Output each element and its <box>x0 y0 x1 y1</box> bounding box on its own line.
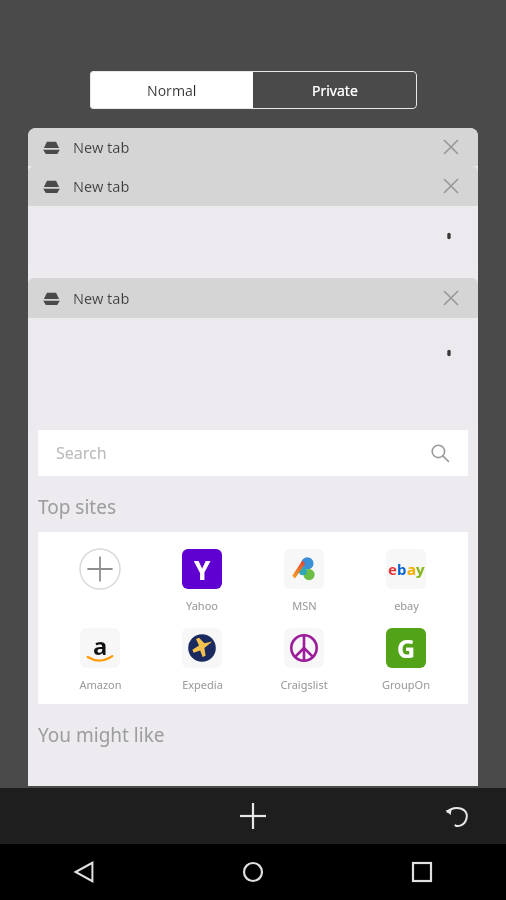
button[interactable]: a <box>60 625 140 692</box>
button[interactable]: Normal <box>90 71 253 109</box>
staticText: You might like <box>38 722 165 748</box>
button[interactable]: Add site <box>60 546 140 598</box>
staticText: Craigslist <box>280 677 328 692</box>
staticText: Search <box>56 442 107 464</box>
staticText: Yahoo <box>186 598 218 613</box>
staticText: Top sites <box>38 494 117 520</box>
staticText: a <box>93 629 108 661</box>
staticText: Normal <box>147 81 197 100</box>
button[interactable]: Y <box>162 546 242 613</box>
staticText: GroupOn <box>382 677 430 692</box>
button[interactable]: New tab <box>28 166 478 206</box>
button[interactable]: New tab <box>28 128 478 166</box>
staticText: Private <box>312 81 358 100</box>
staticText: Expedia <box>182 677 223 692</box>
button[interactable]: Close tab <box>434 281 468 315</box>
button[interactable]: Private <box>253 71 417 109</box>
button[interactable]: MSN <box>264 546 344 613</box>
button[interactable]: New tab <box>225 788 281 844</box>
button[interactable]: Back <box>0 844 168 900</box>
button[interactable]: More options <box>432 336 466 370</box>
button[interactable]: Home <box>168 844 337 900</box>
button[interactable]: More options <box>432 219 466 253</box>
staticText: a <box>407 559 416 579</box>
button[interactable]: Craigslist <box>264 625 344 692</box>
staticText: y <box>416 559 425 579</box>
staticText: New tab <box>73 137 130 157</box>
staticText: New tab <box>73 288 130 308</box>
staticText: Amazon <box>79 677 122 692</box>
staticText: MSN <box>292 598 317 613</box>
button[interactable]: Undo close tab <box>434 792 482 840</box>
staticText: Y <box>194 552 211 587</box>
staticText: G <box>397 631 416 665</box>
staticText: New tab <box>73 176 130 196</box>
button[interactable]: Close tab <box>434 169 468 203</box>
button[interactable]: Expedia <box>162 625 242 692</box>
button[interactable]: Recent apps <box>337 844 506 900</box>
button[interactable]: New tab <box>28 278 478 318</box>
staticText: e <box>388 559 397 579</box>
staticText: b <box>397 559 407 579</box>
staticText: ebay <box>394 598 419 613</box>
button[interactable]: Search <box>38 430 468 476</box>
button[interactable]: G <box>366 625 446 692</box>
button[interactable]: e <box>366 546 446 613</box>
button[interactable]: Close tab <box>434 130 468 164</box>
